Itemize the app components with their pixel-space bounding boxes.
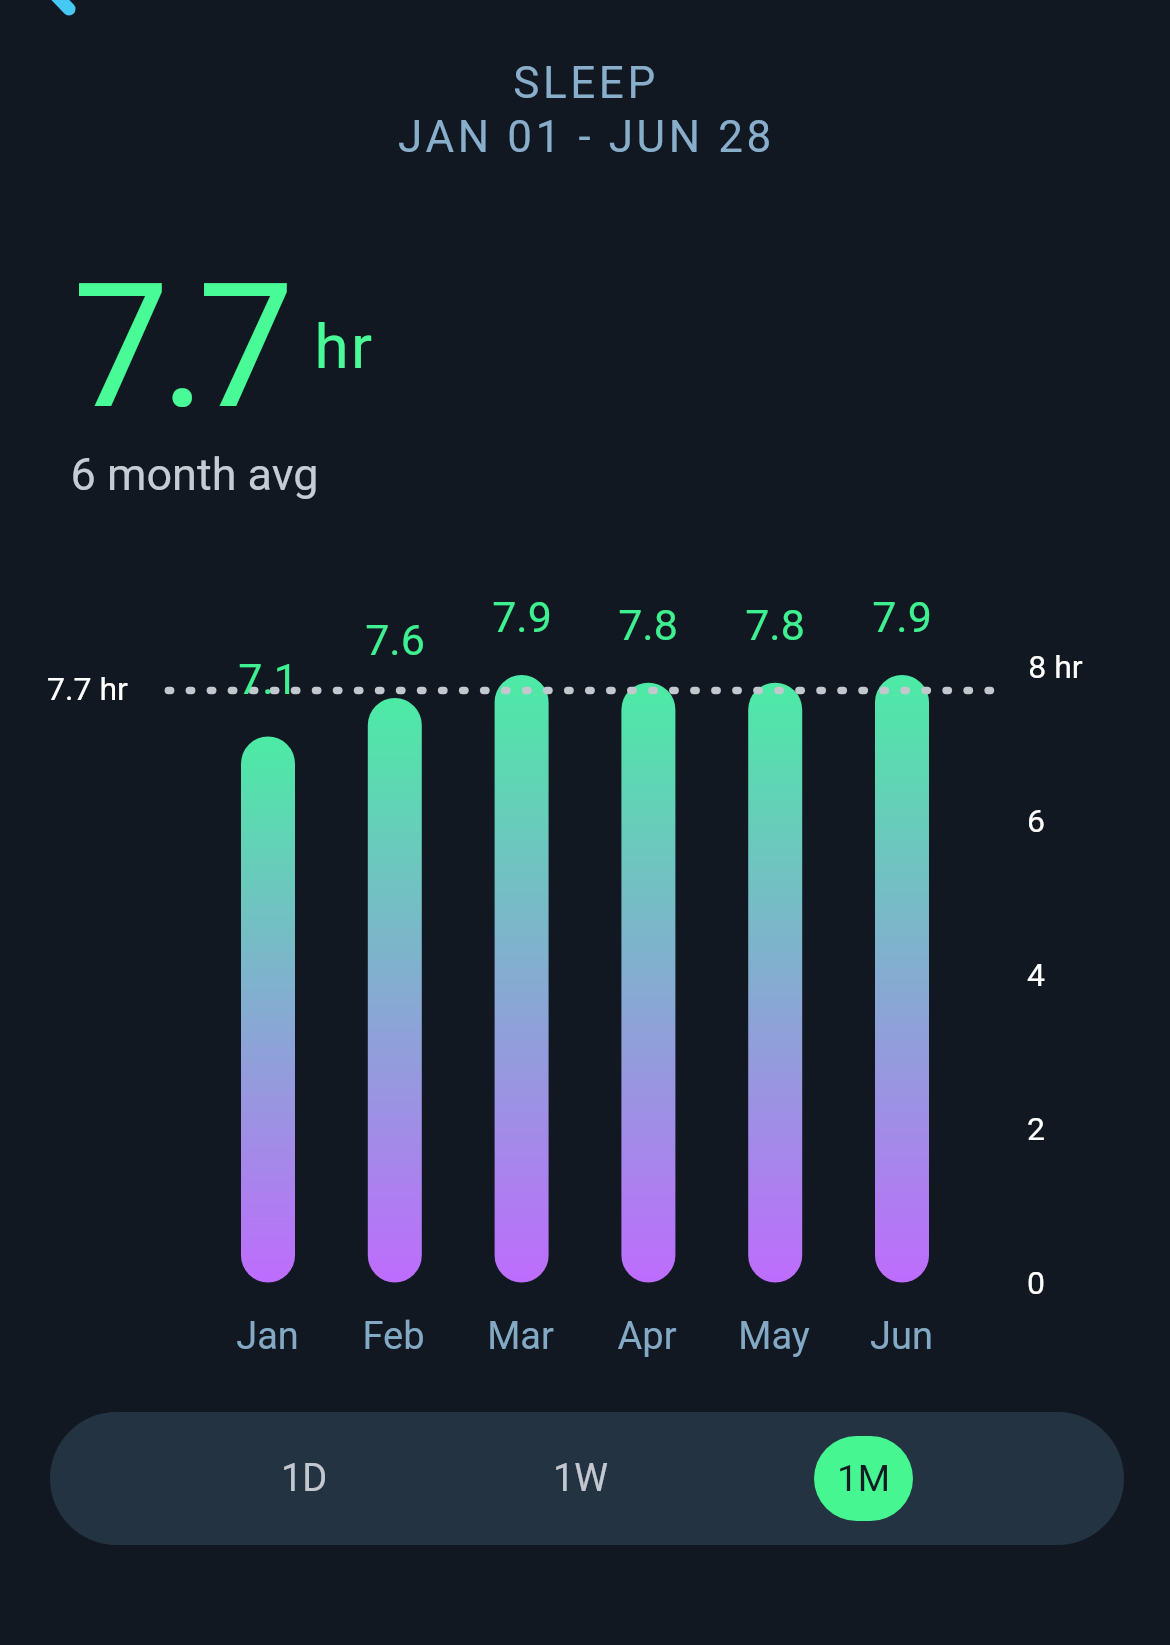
staticText: 7.9 — [872, 592, 932, 642]
staticText: 7.1 — [238, 654, 298, 704]
staticText: 4 — [1027, 956, 1045, 994]
staticText: 6 month avg — [70, 448, 319, 501]
staticText: 2 — [1027, 1110, 1045, 1148]
staticText: Jan — [236, 1314, 299, 1359]
staticText: 6 — [1027, 802, 1045, 840]
staticText: 7.8 — [745, 600, 805, 650]
button[interactable]: Back — [0, 0, 110, 110]
staticText: May — [738, 1314, 810, 1359]
staticText: 8 hr — [1028, 648, 1083, 686]
staticText: Mar — [487, 1314, 554, 1359]
staticText: 0 — [1027, 1264, 1045, 1302]
staticText: SLEEP — [513, 57, 659, 109]
staticText: 1W — [553, 1456, 609, 1501]
button[interactable]: 1W — [447, 1412, 715, 1545]
staticText: Jun — [870, 1314, 933, 1359]
staticText: hr — [314, 310, 375, 383]
staticText: 1D — [281, 1456, 328, 1501]
staticText: 7.7 hr — [47, 670, 128, 708]
staticText: 7.6 — [365, 615, 425, 665]
staticText: 1M — [837, 1457, 891, 1500]
staticText: 7.9 — [492, 592, 552, 642]
button[interactable]: 1D — [170, 1412, 438, 1545]
staticText: Feb — [362, 1314, 425, 1359]
staticText: Apr — [617, 1314, 677, 1359]
staticText: JAN 01 - JUN 28 — [398, 111, 775, 163]
staticText: 7.8 — [618, 600, 678, 650]
button[interactable]: 1M — [729, 1412, 997, 1545]
staticText: 7.7 — [72, 246, 286, 448]
